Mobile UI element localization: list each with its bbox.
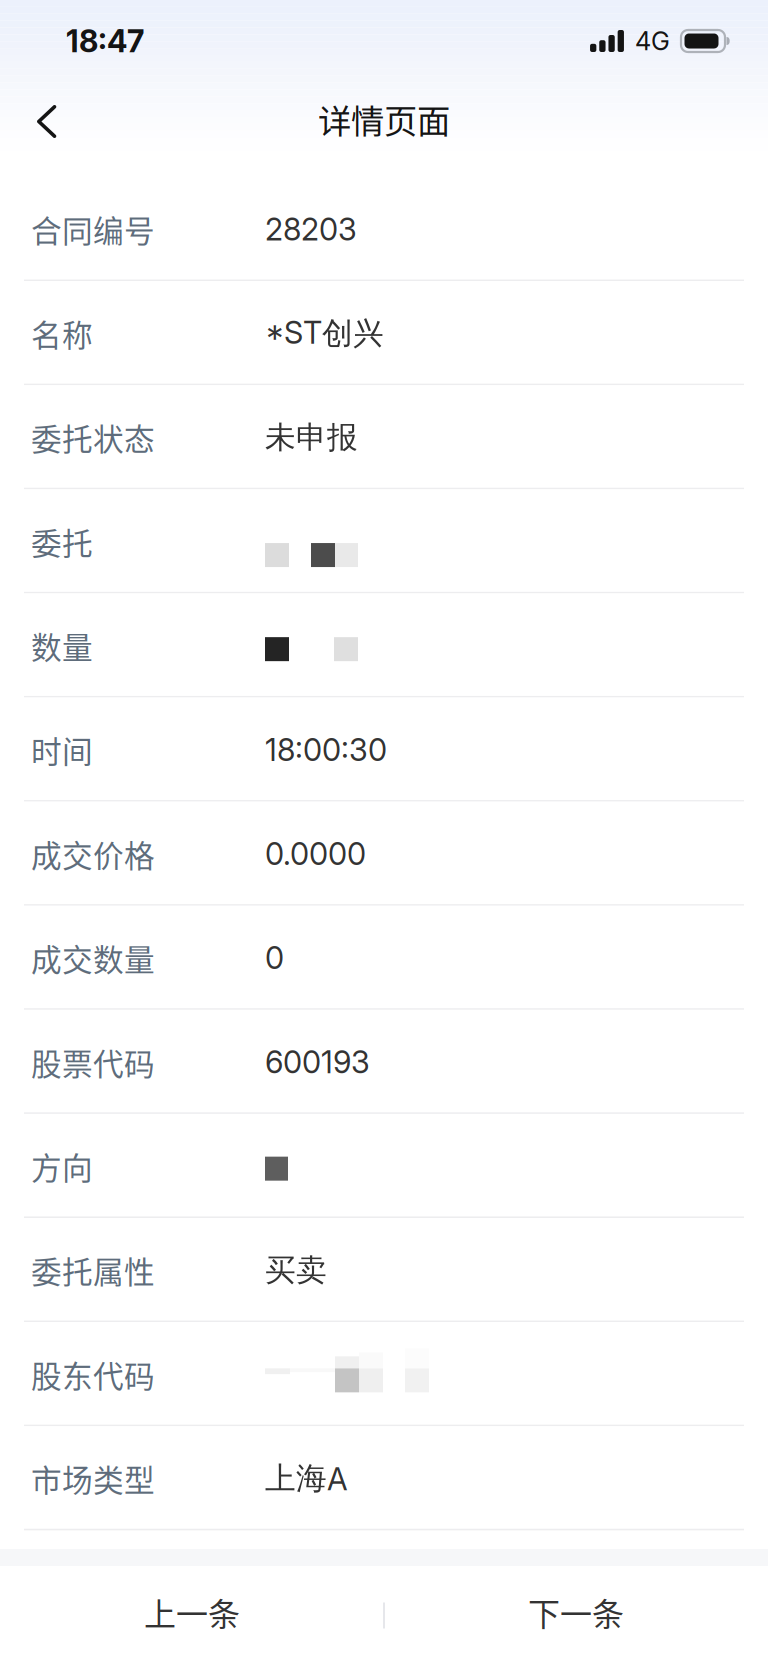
button[interactable]: Back [0, 84, 89, 163]
staticText: 0.0000 [265, 835, 366, 872]
staticText: 28203 [265, 211, 357, 248]
staticText: 600193 [265, 1043, 370, 1081]
staticText: 方向 [31, 1144, 93, 1188]
staticText: 委托状态 [31, 415, 155, 460]
staticText: 上海A [265, 1459, 348, 1498]
staticText: 名称 [31, 311, 93, 355]
button[interactable]: 下一条 [384, 1566, 768, 1665]
staticText: 股东代码 [31, 1352, 155, 1396]
staticText: 买卖 [265, 1251, 327, 1289]
staticText: 上一条 [144, 1589, 240, 1635]
staticText: 委托属性 [31, 1248, 155, 1292]
staticText: 合同编号 [31, 207, 155, 251]
staticText: 未申报 [265, 418, 358, 457]
staticText: 数量 [31, 623, 93, 668]
staticText: 详情页面 [318, 95, 450, 143]
staticText: 下一条 [528, 1589, 624, 1635]
staticText: 委托 [31, 519, 93, 564]
staticText: 时间 [31, 727, 93, 772]
staticText: 成交价格 [31, 832, 155, 876]
staticText: 18:47 [66, 22, 144, 59]
staticText: *ST创兴 [265, 314, 384, 353]
button[interactable]: 上一条 [0, 1566, 384, 1665]
staticText: 股票代码 [31, 1040, 155, 1084]
staticText: 0 [265, 939, 284, 976]
staticText: 成交数量 [31, 936, 155, 980]
staticText: 18:00:30 [265, 731, 387, 768]
staticText: 4G [635, 26, 670, 56]
staticText: 市场类型 [31, 1456, 155, 1501]
